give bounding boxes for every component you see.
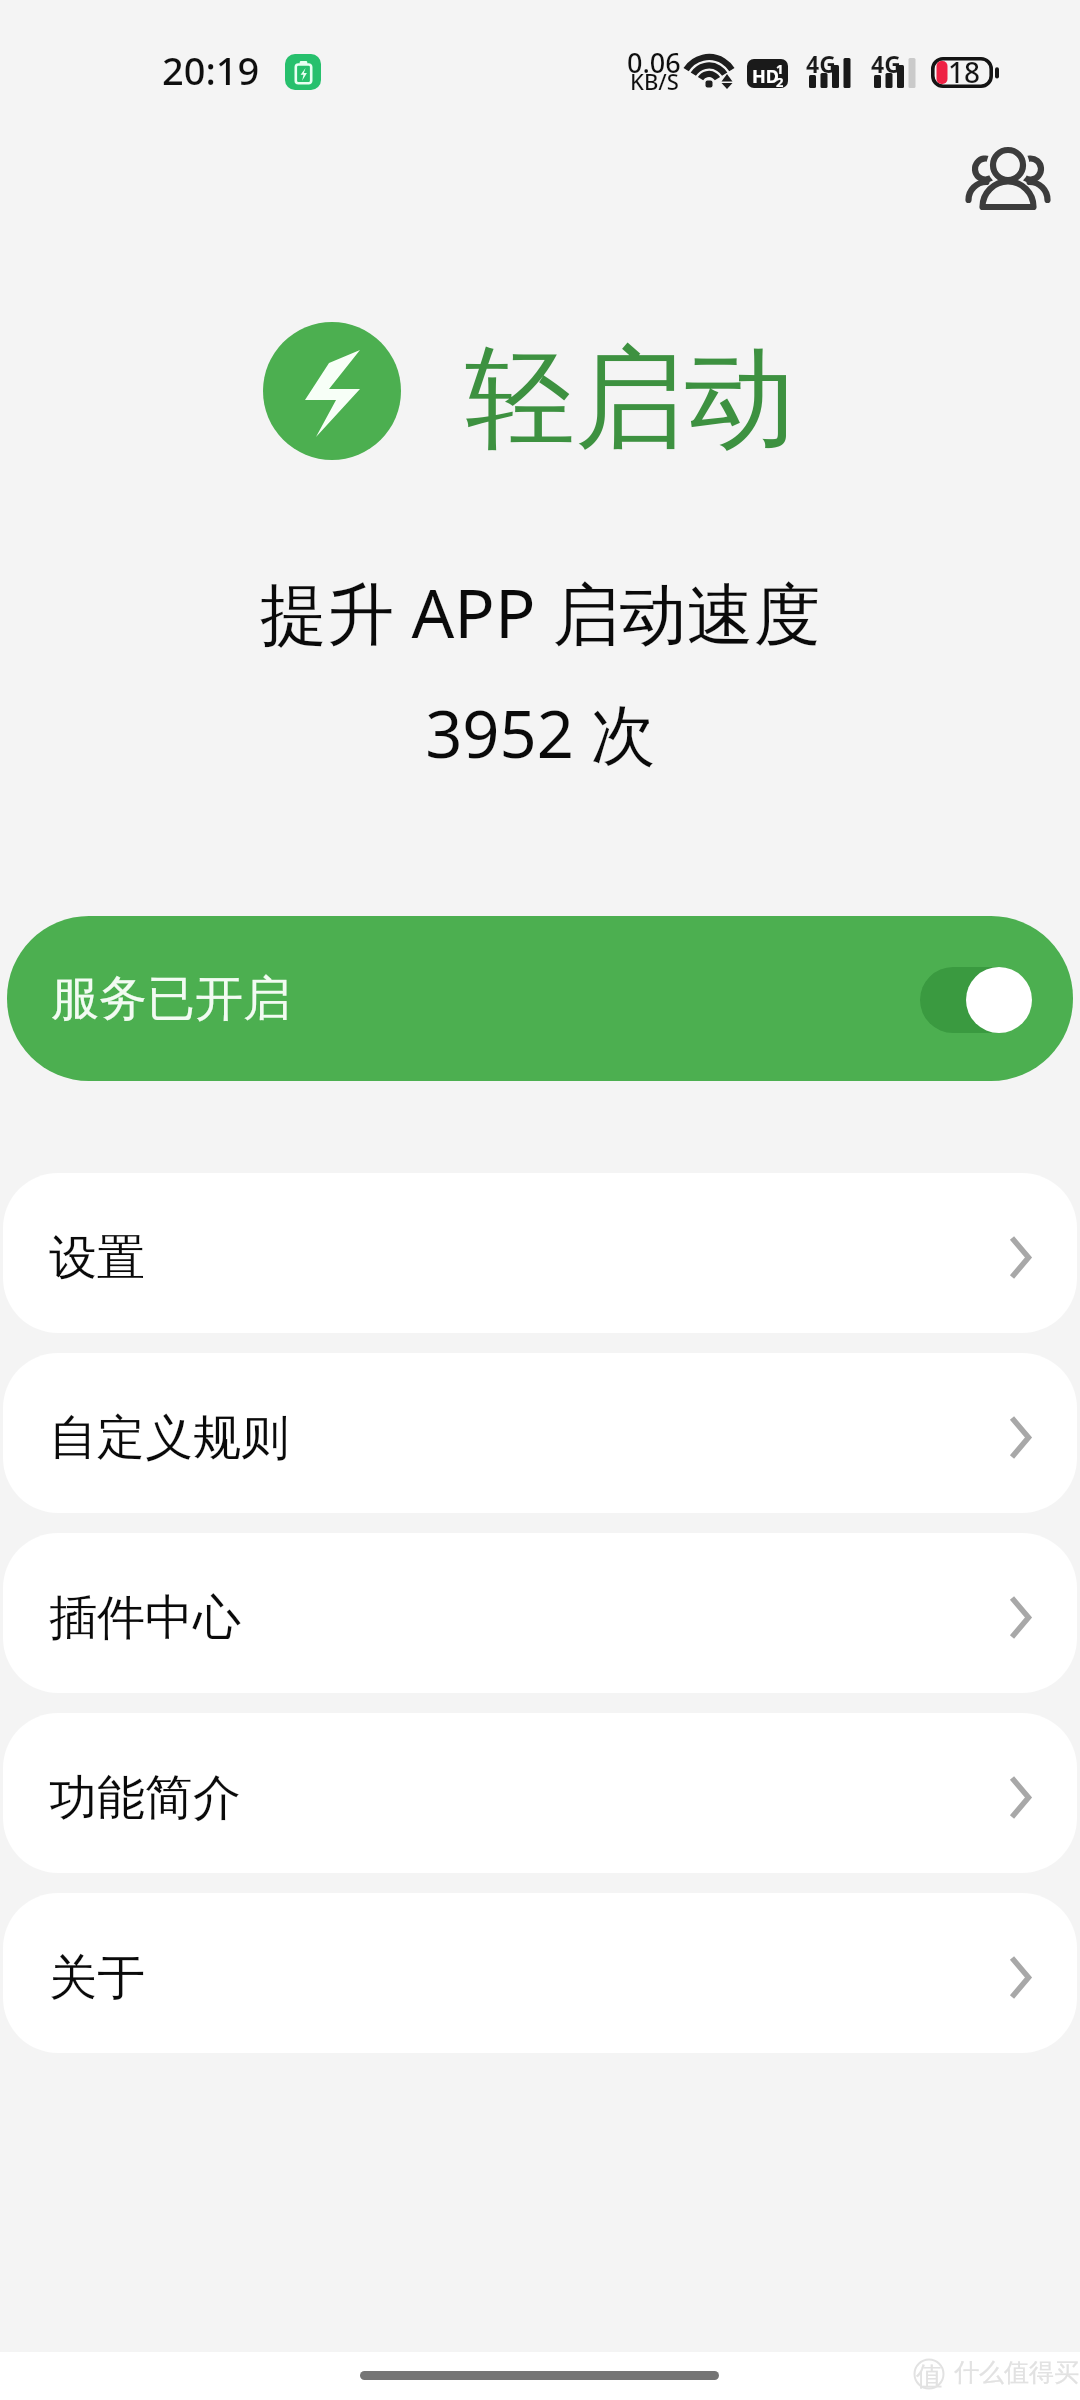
button[interactable]: 插件中心 xyxy=(3,1533,1077,1693)
staticText: 4G xyxy=(806,48,836,79)
staticText: 关于 xyxy=(49,1948,145,2008)
staticText: 0.06 xyxy=(627,44,681,81)
staticText: 值 xyxy=(916,2360,942,2392)
staticText: 2 xyxy=(776,73,784,88)
button[interactable]: 设置 xyxy=(3,1173,1077,1333)
staticText: 设置 xyxy=(49,1228,145,1288)
staticText: 服务已开启 xyxy=(51,969,291,1029)
staticText: 1 xyxy=(776,60,784,78)
button[interactable]: 自定义规则 xyxy=(3,1353,1077,1513)
staticText: 提升 APP 启动速度 xyxy=(260,566,821,658)
button[interactable]: 服务已开启 xyxy=(7,916,1073,1081)
button[interactable]: 功能简介 xyxy=(3,1713,1077,1873)
staticText: 20:19 xyxy=(162,44,260,96)
staticText: 什么值得买 xyxy=(954,2357,1079,2388)
staticText: 18 xyxy=(948,53,981,84)
button[interactable]: Members xyxy=(950,124,1066,230)
staticText: 轻启动 xyxy=(465,330,795,469)
button[interactable]: 关于 xyxy=(3,1893,1077,2053)
staticText: 3952 次 xyxy=(425,689,656,778)
staticText: 插件中心 xyxy=(49,1588,241,1648)
staticText: 4G xyxy=(871,48,901,79)
staticText: HD xyxy=(752,64,779,88)
staticText: 功能简介 xyxy=(49,1768,241,1828)
staticText: 自定义规则 xyxy=(49,1408,289,1468)
staticText: KB/S xyxy=(630,66,679,96)
